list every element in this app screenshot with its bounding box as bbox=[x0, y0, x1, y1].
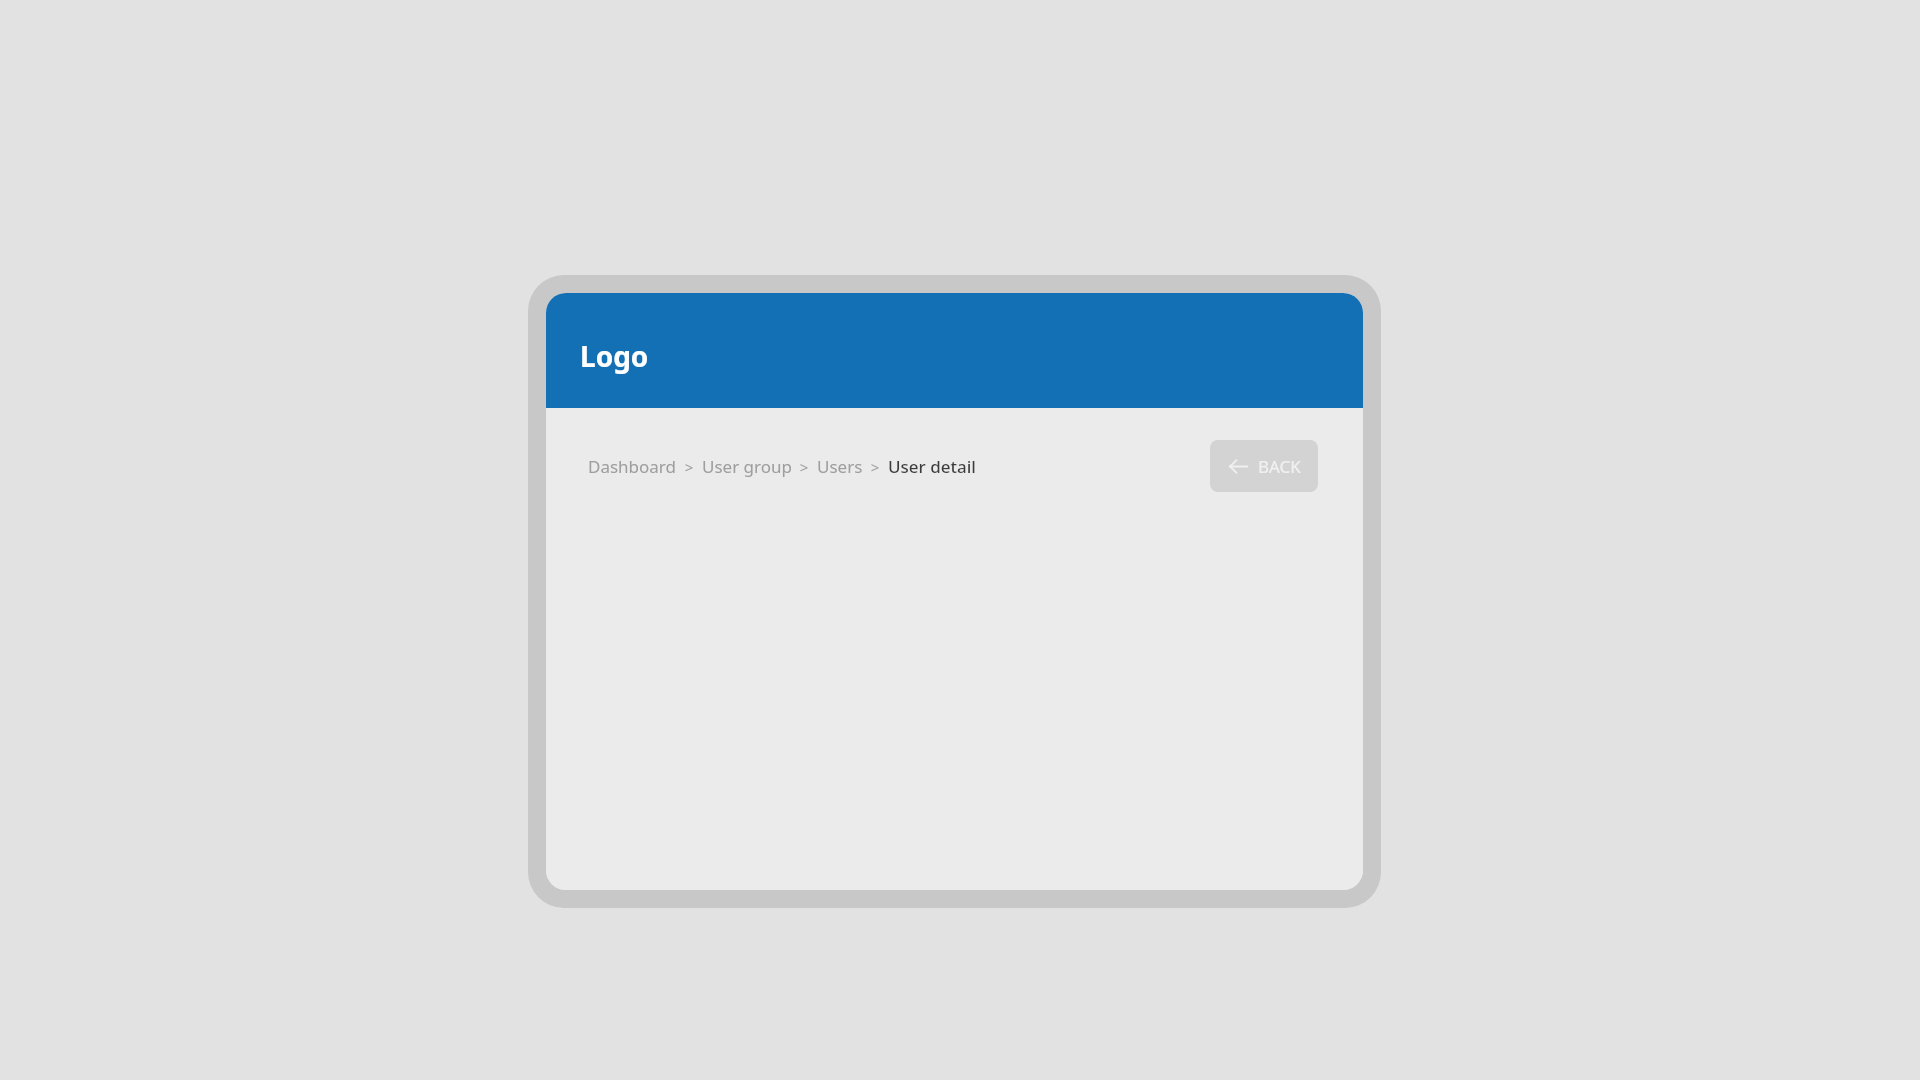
staticText: User group bbox=[702, 455, 792, 478]
button[interactable]: Logo bbox=[580, 337, 649, 375]
button[interactable]: Dashboard bbox=[588, 455, 677, 478]
staticText: Logo bbox=[580, 337, 649, 375]
button[interactable]: Users bbox=[817, 455, 863, 478]
staticText: User detail bbox=[888, 455, 976, 478]
staticText: > bbox=[863, 457, 888, 477]
button[interactable]: User group bbox=[702, 455, 792, 478]
staticText: Dashboard bbox=[588, 455, 677, 478]
staticText: > bbox=[677, 457, 702, 477]
staticText: BACK bbox=[1258, 455, 1301, 478]
button[interactable]: Back bbox=[1210, 440, 1318, 492]
staticText: > bbox=[792, 457, 817, 477]
staticText: Users bbox=[817, 455, 863, 478]
